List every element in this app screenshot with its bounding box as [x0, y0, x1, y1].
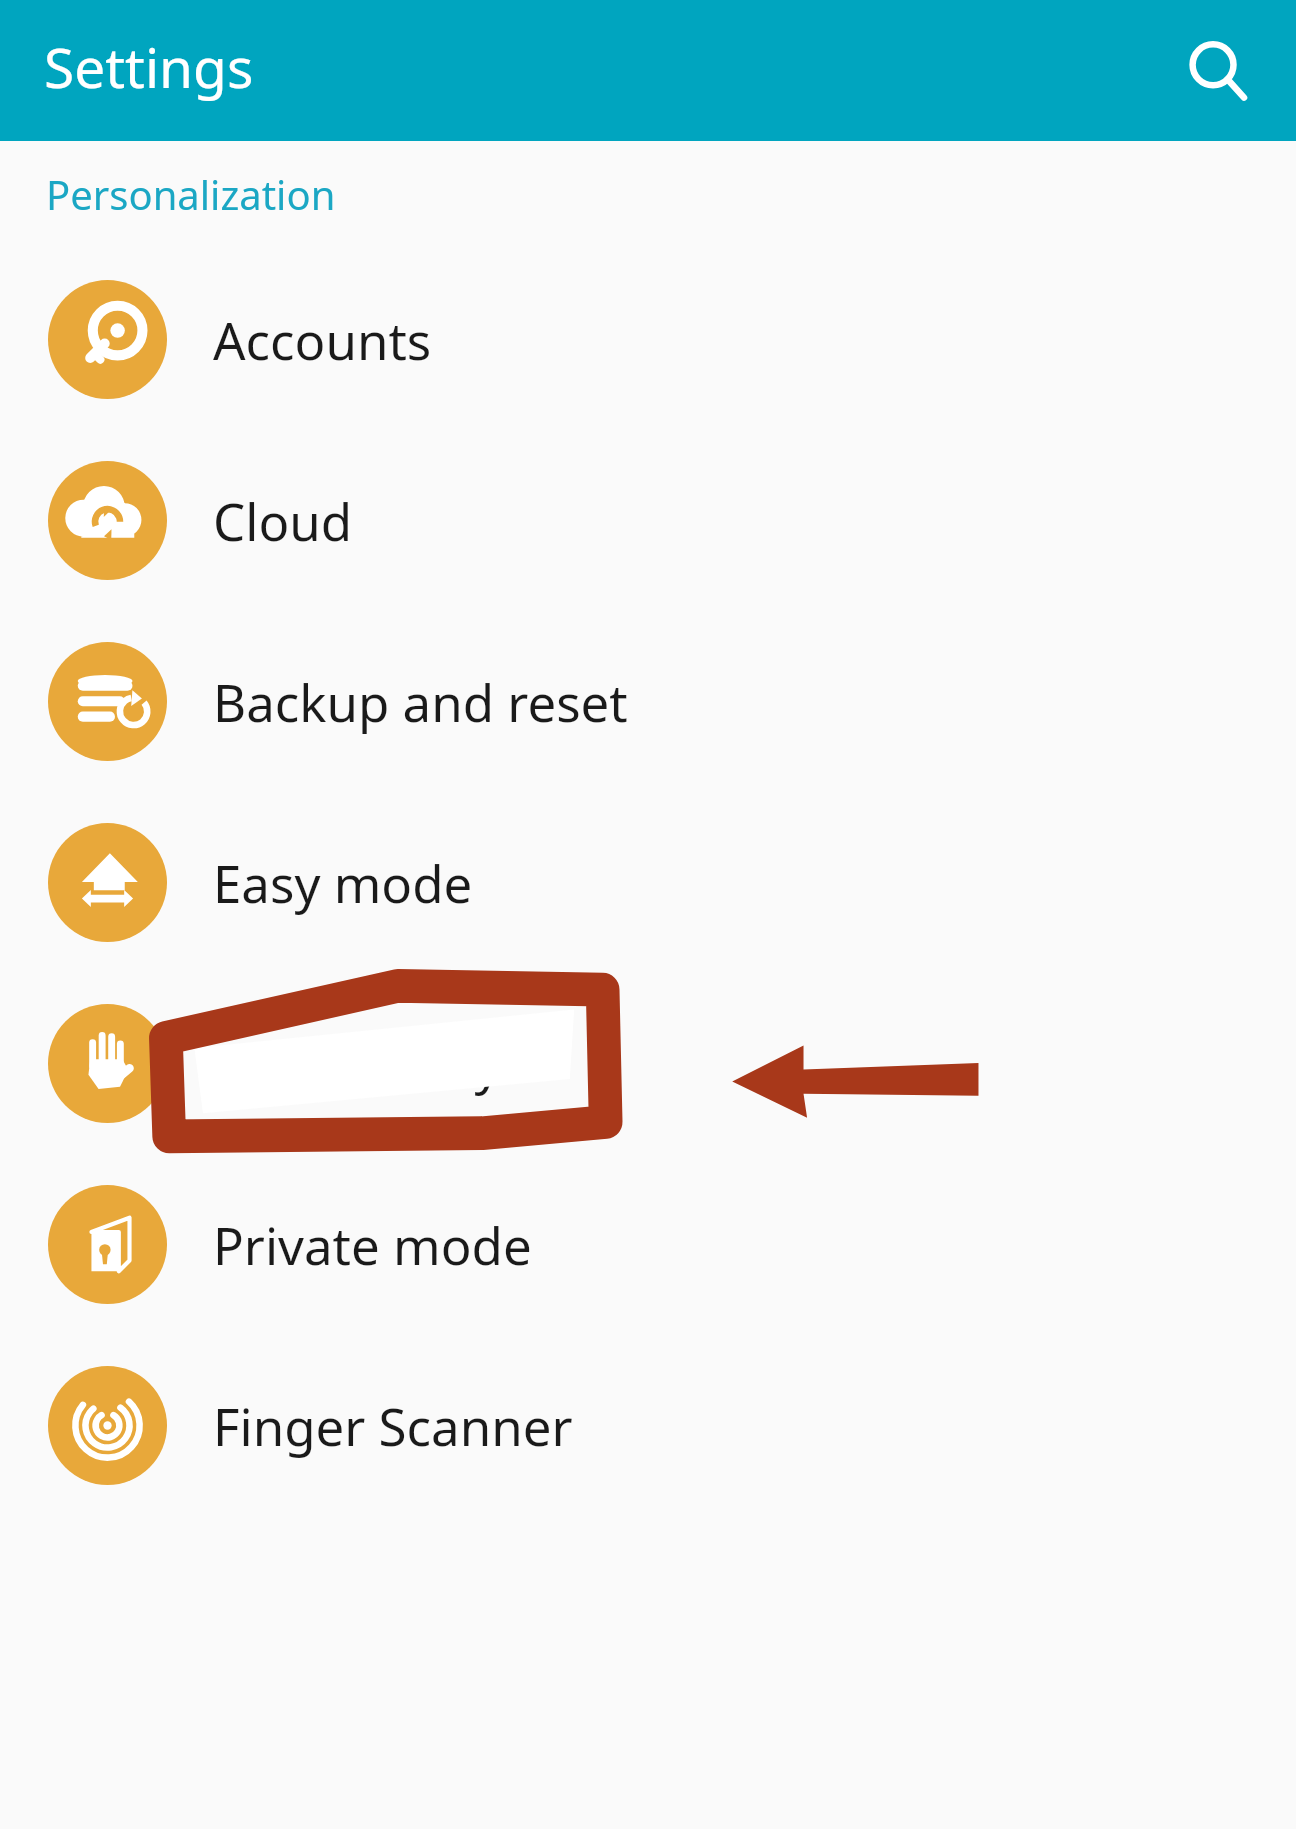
staticText: Finger Scanner [213, 1391, 573, 1460]
staticText: Settings [44, 29, 254, 104]
button[interactable]: Cloud [0, 430, 1296, 611]
button[interactable]: Private mode [0, 1154, 1296, 1335]
staticText: Backup and reset [213, 667, 628, 736]
staticText: Accessibility [213, 1029, 501, 1098]
button[interactable]: Backup and reset [0, 611, 1296, 792]
staticText: Personalization [46, 167, 336, 221]
button[interactable]: Easy mode [0, 792, 1296, 973]
staticText: Accounts [213, 305, 432, 374]
staticText: Cloud [213, 486, 353, 555]
staticText: Easy mode [213, 848, 473, 917]
button[interactable]: Accounts [0, 249, 1296, 430]
button[interactable]: Search [1170, 23, 1266, 119]
staticText: Private mode [213, 1210, 532, 1279]
button[interactable]: Finger Scanner [0, 1335, 1296, 1516]
button[interactable]: Accessibility [0, 973, 1296, 1154]
